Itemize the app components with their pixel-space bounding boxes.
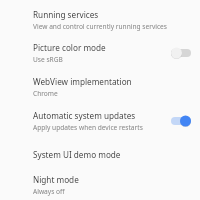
staticText: Running services: [33, 9, 99, 20]
button[interactable]: Automatic system updates: [0, 104, 200, 138]
staticText: Picture color mode: [33, 42, 106, 53]
staticText: Apply updates when device restarts: [33, 123, 143, 132]
staticText: System UI demo mode: [33, 149, 121, 160]
button[interactable]: WebView implementation: [0, 70, 200, 104]
button[interactable]: Night mode: [0, 170, 200, 200]
staticText: WebView implementation: [33, 76, 132, 87]
button[interactable]: Picture color mode: [0, 36, 200, 70]
button[interactable]: System UI demo mode: [0, 138, 200, 170]
staticText: Automatic system updates: [33, 110, 136, 121]
staticText: Always off: [33, 187, 65, 196]
staticText: View and control currently running servi…: [33, 22, 167, 31]
staticText: Chrome: [33, 89, 58, 98]
button[interactable]: Running services: [0, 4, 200, 36]
staticText: Night mode: [33, 174, 79, 185]
button[interactable]: Toggle on: [168, 112, 194, 130]
button[interactable]: Toggle off: [168, 44, 194, 62]
staticText: Use sRGB: [33, 55, 63, 64]
